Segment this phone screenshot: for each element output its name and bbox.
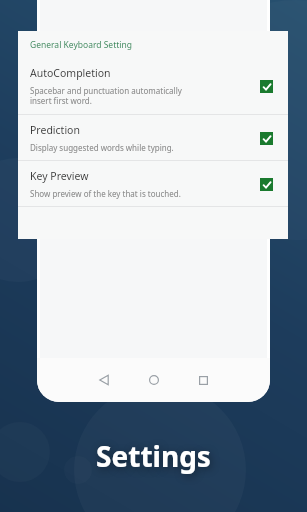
staticText: Display suggested words while typing. xyxy=(30,142,174,153)
button[interactable]: Back xyxy=(93,369,115,391)
staticText: Key Preview xyxy=(30,169,89,183)
staticText: Prediction xyxy=(30,123,80,137)
button[interactable]: Home xyxy=(143,369,165,391)
button[interactable]: Key Preview xyxy=(18,161,288,206)
button[interactable]: AutoCompletion xyxy=(18,58,288,114)
button[interactable]: Key Preview toggle xyxy=(256,174,276,194)
staticText: Settings xyxy=(0,437,307,475)
button[interactable]: AutoCompletion toggle xyxy=(256,76,276,96)
staticText: General Keyboard Setting xyxy=(30,39,132,51)
button[interactable]: Recents xyxy=(192,369,214,391)
staticText: Spacebar and punctuation automatically i… xyxy=(30,85,182,106)
staticText: Show preview of the key that is touched. xyxy=(30,188,181,199)
staticText: AutoCompletion xyxy=(30,66,111,80)
button[interactable]: Prediction toggle xyxy=(256,128,276,148)
button[interactable]: Prediction xyxy=(18,115,288,160)
